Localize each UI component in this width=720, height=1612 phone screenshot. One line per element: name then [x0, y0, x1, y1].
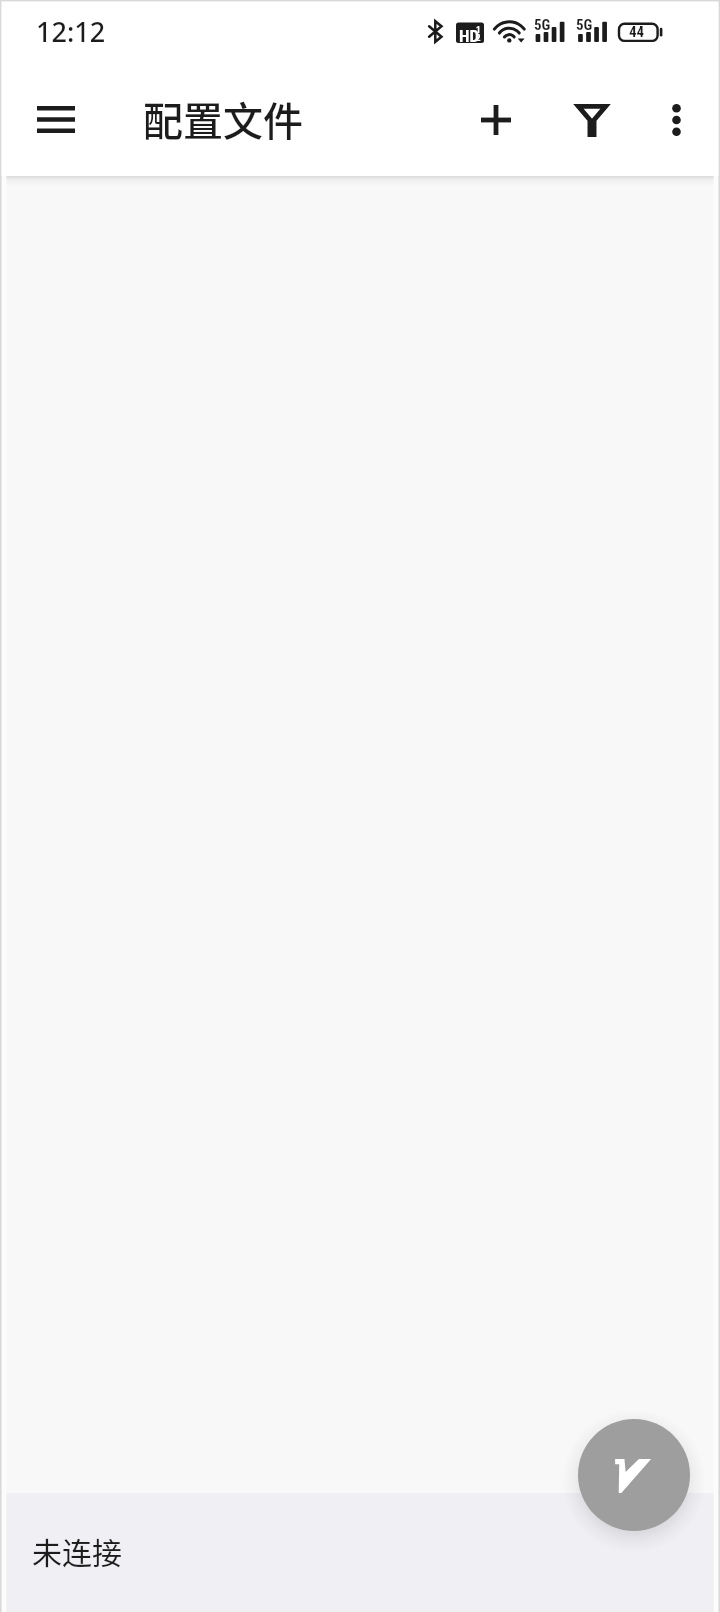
button[interactable]: Filter [544, 72, 640, 168]
staticText: 5G [576, 16, 593, 34]
button[interactable]: 未连接 [0, 1493, 720, 1612]
staticText: 1 [476, 25, 481, 36]
staticText: 未连接 [32, 1529, 122, 1572]
staticText: 5G [534, 16, 551, 34]
button[interactable]: More options [628, 72, 720, 168]
button[interactable]: Add configuration [448, 72, 544, 168]
staticText: HD [459, 26, 480, 46]
staticText: 配置文件 [143, 90, 303, 148]
staticText: 12:12 [36, 13, 106, 50]
button[interactable]: Connect [578, 1419, 690, 1531]
staticText: 44 [629, 23, 645, 41]
staticText: 2 [476, 33, 481, 44]
button[interactable]: Open navigation drawer [8, 71, 104, 167]
